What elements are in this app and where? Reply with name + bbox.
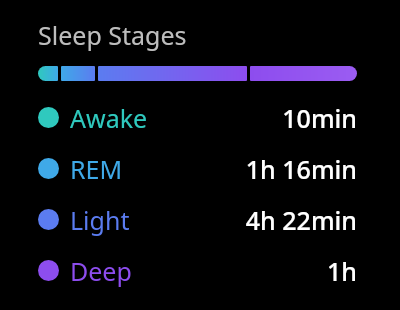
button[interactable]: Light <box>38 202 357 237</box>
staticText: REM <box>70 152 123 186</box>
button[interactable]: Deep <box>38 253 357 288</box>
button[interactable]: Awake <box>38 100 357 135</box>
staticText: Light <box>70 203 130 237</box>
button[interactable]: REM <box>38 151 357 186</box>
staticText: 4h 22min <box>245 203 357 237</box>
staticText: Sleep Stages <box>38 18 187 52</box>
staticText: Deep <box>70 254 132 288</box>
staticText: 1h <box>327 254 357 288</box>
staticText: 10min <box>282 101 357 135</box>
button[interactable]: Sleep stage distribution <box>38 66 357 81</box>
staticText: Awake <box>70 101 148 135</box>
staticText: 1h 16min <box>245 152 357 186</box>
